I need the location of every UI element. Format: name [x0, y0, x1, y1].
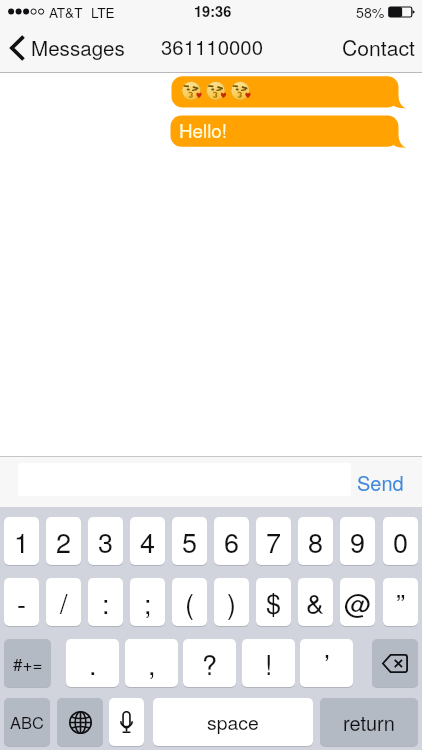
staticText: LTE — [91, 2, 115, 21]
staticText: 19:36 — [194, 1, 232, 22]
staticText: 4 — [140, 522, 156, 561]
button[interactable]: - — [4, 578, 39, 626]
button[interactable]: Backspace — [372, 639, 418, 687]
staticText: space — [207, 708, 259, 736]
button[interactable]: 4 — [130, 517, 165, 565]
staticText: ’ — [324, 644, 330, 683]
button[interactable]: @ — [340, 578, 375, 626]
button[interactable]: space — [153, 698, 313, 746]
button[interactable]: ’ — [300, 639, 353, 687]
button[interactable]: , — [125, 639, 178, 687]
button[interactable]: . — [66, 639, 119, 687]
button[interactable]: & — [298, 578, 333, 626]
staticText: Send — [357, 468, 404, 497]
staticText: . — [89, 644, 97, 683]
button[interactable]: Messages — [0, 24, 125, 73]
staticText: 361110000 — [161, 32, 264, 61]
button[interactable]: ” — [383, 578, 418, 626]
button[interactable]: 2 — [46, 517, 81, 565]
staticText: 6 — [224, 522, 240, 561]
staticText: Hello! — [179, 116, 228, 143]
button[interactable]: 3 — [88, 517, 123, 565]
staticText: AT&T — [49, 2, 83, 21]
staticText: 2 — [56, 522, 72, 561]
staticText: 1 — [14, 522, 30, 561]
staticText: ; — [144, 583, 152, 622]
button[interactable]: 7 — [256, 517, 291, 565]
button[interactable]: $ — [256, 578, 291, 626]
staticText: & — [306, 583, 325, 622]
staticText: ABC — [10, 710, 44, 734]
button[interactable]: return — [320, 698, 418, 746]
button[interactable]: 8 — [298, 517, 333, 565]
staticText: Contact — [342, 32, 416, 62]
staticText: ” — [396, 583, 405, 622]
staticText: ! — [265, 644, 273, 683]
button[interactable]: Dictation — [109, 698, 144, 746]
staticText: 58% — [356, 2, 385, 22]
button[interactable]: Contact — [342, 24, 422, 73]
staticText: @ — [344, 583, 372, 622]
staticText: ) — [227, 583, 236, 622]
staticText: Messages — [31, 32, 125, 61]
button[interactable]: ABC — [4, 698, 50, 746]
staticText: $ — [266, 583, 282, 622]
staticText: 7 — [266, 522, 282, 561]
staticText: - — [17, 583, 26, 622]
button[interactable]: : — [88, 578, 123, 626]
staticText: 9 — [350, 522, 366, 561]
staticText: ? — [202, 644, 218, 683]
staticText: #+= — [13, 651, 43, 675]
button[interactable]: Send — [357, 456, 404, 507]
button[interactable]: ; — [130, 578, 165, 626]
button[interactable]: 9 — [340, 517, 375, 565]
staticText: / — [60, 583, 68, 622]
staticText: 0 — [393, 522, 409, 561]
staticText: 5 — [182, 522, 198, 561]
staticText: return — [343, 708, 395, 737]
staticText: 3 — [98, 522, 114, 561]
staticText: , — [148, 644, 156, 683]
staticText: 8 — [308, 522, 324, 561]
button[interactable]: 0 — [383, 517, 418, 565]
button[interactable]: ) — [214, 578, 249, 626]
button[interactable]: ( — [172, 578, 207, 626]
button[interactable]: / — [46, 578, 81, 626]
button[interactable]: ! — [242, 639, 295, 687]
button[interactable]: 6 — [214, 517, 249, 565]
button[interactable]: Switch keyboard — [57, 698, 103, 746]
button[interactable]: 5 — [172, 517, 207, 565]
button[interactable]: ? — [183, 639, 236, 687]
staticText: : — [102, 583, 110, 622]
staticText: ( — [185, 583, 194, 622]
button[interactable]: 1 — [4, 517, 39, 565]
button[interactable]: #+= — [4, 639, 51, 687]
